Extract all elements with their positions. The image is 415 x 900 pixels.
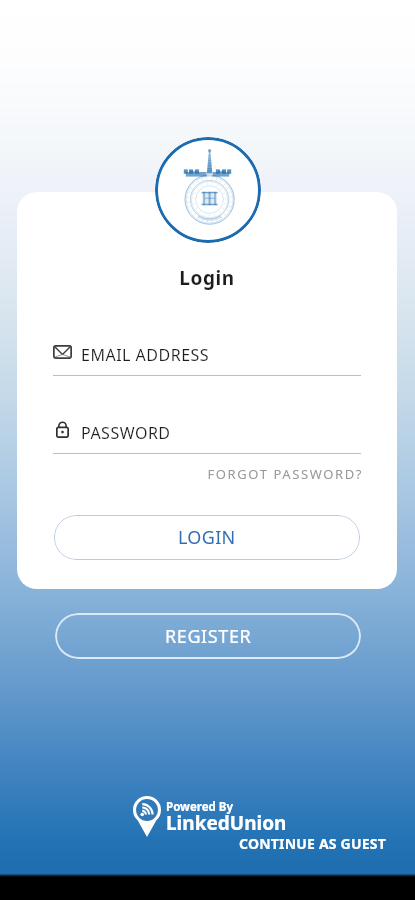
other: LinkedUnion logo bbox=[133, 796, 161, 837]
staticText: LOGIN bbox=[178, 525, 236, 550]
staticText: LinkedUnion bbox=[166, 810, 287, 836]
button[interactable]: PASSWORD bbox=[53, 422, 361, 444]
staticText: CONTINUE AS GUEST bbox=[239, 834, 386, 853]
staticText: Login bbox=[17, 265, 397, 291]
button[interactable]: LOGIN bbox=[54, 515, 360, 560]
button[interactable]: REGISTER bbox=[55, 613, 361, 659]
staticText: REGISTER bbox=[165, 624, 252, 649]
button[interactable]: FORGOT PASSWORD? bbox=[207, 465, 363, 483]
button[interactable]: EMAIL ADDRESS bbox=[53, 344, 361, 366]
staticText: Powered By bbox=[166, 799, 234, 815]
staticText: PASSWORD bbox=[81, 422, 171, 444]
button[interactable]: CONTINUE AS GUEST bbox=[233, 830, 392, 857]
staticText: EMAIL ADDRESS bbox=[81, 344, 210, 366]
